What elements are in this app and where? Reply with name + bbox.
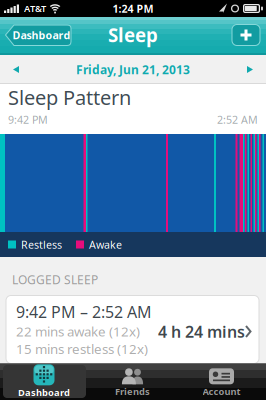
button[interactable]: Next day	[239, 58, 261, 81]
staticText: 9:42 PM – 2:52 AM	[16, 301, 152, 322]
button[interactable]: Account	[177, 363, 266, 400]
staticText: 15 mins restless (12x)	[16, 340, 148, 358]
staticText: Dashboard	[12, 28, 70, 42]
staticText: Account	[202, 385, 240, 398]
button[interactable]: Add	[232, 24, 260, 45]
staticText: 9:42 PM	[8, 113, 48, 127]
staticText: Friends	[115, 385, 150, 398]
staticText: AT&T	[24, 2, 46, 15]
button[interactable]: Previous day	[5, 58, 27, 81]
staticText: Sleep	[108, 23, 158, 47]
staticText: 1:24 PM	[112, 1, 153, 16]
staticText: 22 mins awake (12x)	[16, 322, 140, 340]
button[interactable]: Dashboard	[0, 363, 88, 400]
staticText: Dashboard	[18, 386, 70, 399]
staticText: Sleep Pattern	[8, 84, 131, 111]
button[interactable]: Friends	[88, 363, 177, 400]
staticText: LOGGED SLEEP	[12, 271, 98, 287]
staticText: Restless	[21, 237, 62, 252]
staticText: Friday, Jun 21, 2013	[76, 61, 190, 77]
staticText: 4 h 24 mins	[158, 321, 245, 342]
button[interactable]: 9:42 PM – 2:52 AM	[6, 295, 259, 363]
staticText: Awake	[89, 237, 122, 252]
button[interactable]: Friday, Jun 21, 2013	[76, 61, 190, 77]
staticText: 2:52 AM	[217, 113, 258, 127]
button[interactable]: Dashboard	[5, 24, 71, 45]
